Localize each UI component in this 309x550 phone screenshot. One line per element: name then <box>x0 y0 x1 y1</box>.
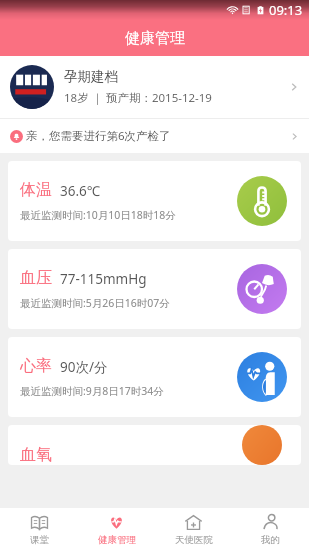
button[interactable]: 我的 <box>232 508 309 550</box>
button[interactable]: 血氧 <box>8 425 301 465</box>
button[interactable]: 体温 <box>8 161 301 241</box>
staticText: 90次/分 <box>60 358 108 376</box>
other: 我的 <box>261 513 280 532</box>
staticText: 36.6℃ <box>60 182 101 200</box>
staticText: 健康管理 <box>125 29 185 48</box>
other: 课堂 <box>30 513 49 532</box>
staticText: 最近监测时间:9月8日17时34分 <box>20 384 164 398</box>
button[interactable]: 血压 <box>8 249 301 329</box>
staticText: 最近监测时间:10月10日18时18分 <box>20 208 176 222</box>
button[interactable]: 心率 <box>8 337 301 417</box>
button[interactable]: 健康管理 <box>78 508 155 550</box>
staticText: 18岁 ｜ 预产期：2015-12-19 <box>64 90 212 106</box>
staticText: 心率 <box>20 356 52 376</box>
staticText: 最近监测时间:5月26日16时07分 <box>20 296 170 310</box>
staticText: 77-115mmHg <box>60 270 147 288</box>
button[interactable]: 课堂 <box>0 508 78 550</box>
staticText: 健康管理 <box>98 534 136 546</box>
button[interactable]: 亲，您需要进行第6次产检了 <box>0 119 309 153</box>
staticText: 课堂 <box>30 534 49 546</box>
staticText: 亲，您需要进行第6次产检了 <box>26 128 171 144</box>
button[interactable]: 天使医院 <box>155 508 232 550</box>
staticText: 我的 <box>261 534 280 546</box>
staticText: 天使医院 <box>175 534 213 546</box>
other: 健康管理 <box>107 513 126 532</box>
staticText: 体温 <box>20 180 52 200</box>
staticText: 09:13 <box>269 1 303 19</box>
staticText: 血压 <box>20 268 52 288</box>
staticText: 孕期建档 <box>64 68 118 85</box>
other: 天使医院 <box>184 513 203 532</box>
button[interactable]: 孕期建档 <box>0 56 309 118</box>
staticText: 血氧 <box>20 445 52 465</box>
